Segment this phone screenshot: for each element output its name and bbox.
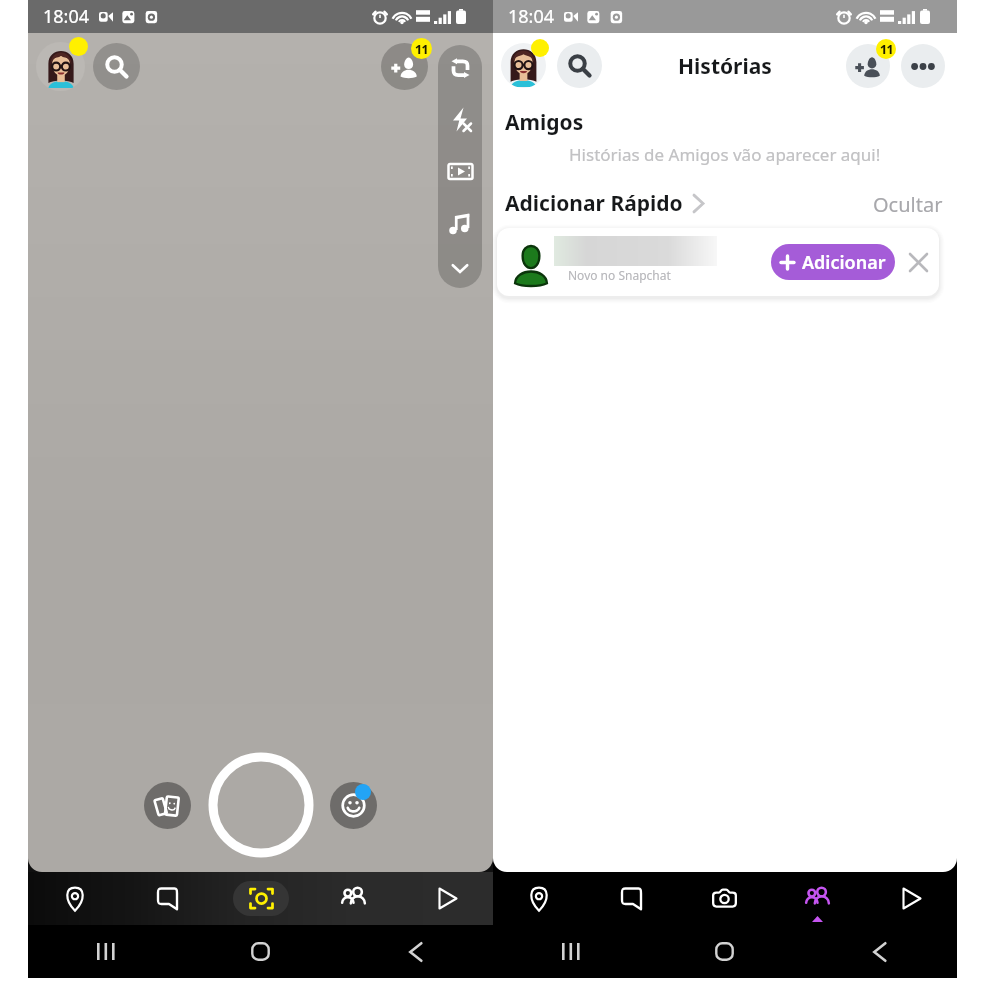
button[interactable]: Capture	[208, 752, 314, 858]
staticText: Histórias de Amigos vão aparecer aqui!	[569, 143, 881, 166]
button[interactable]: Stories	[771, 872, 864, 925]
button[interactable]: Home	[183, 925, 338, 978]
button[interactable]: Flip camera	[438, 45, 482, 89]
button[interactable]: Profile	[501, 43, 546, 88]
button[interactable]: Chat	[585, 872, 678, 925]
button[interactable]: Home	[647, 925, 802, 978]
staticText: 18:04	[43, 4, 90, 29]
button[interactable]: Spotlight	[864, 872, 957, 925]
button[interactable]: Add friends	[381, 43, 428, 90]
button[interactable]: Search	[557, 43, 602, 88]
button[interactable]: Back	[338, 925, 493, 978]
staticText: Amigos	[505, 108, 584, 137]
staticText: 11	[880, 41, 893, 57]
button[interactable]: Profile	[36, 42, 85, 91]
button[interactable]: Adicionar Rápido	[505, 189, 705, 218]
button[interactable]: Search	[93, 43, 140, 90]
button[interactable]: Memories	[144, 782, 191, 829]
staticText: 18:04	[508, 4, 555, 29]
button[interactable]: Map	[28, 872, 121, 925]
button[interactable]: Back	[802, 925, 957, 978]
staticText: Ocultar	[873, 191, 943, 218]
button[interactable]: Spotlight	[400, 872, 493, 925]
button[interactable]: Add friends	[846, 44, 890, 88]
button[interactable]: More options	[443, 257, 477, 279]
staticText: Adicionar Rápido	[505, 189, 683, 218]
button[interactable]: Lenses	[330, 782, 377, 829]
button[interactable]: Novo no Snapchat	[497, 228, 939, 296]
button[interactable]: Recents	[493, 925, 647, 978]
button[interactable]: Camera	[678, 872, 771, 925]
staticText: Adicionar	[802, 250, 886, 275]
button[interactable]: Music	[438, 201, 482, 245]
button[interactable]: Multi snap	[438, 149, 482, 193]
button[interactable]: Adicionar	[771, 244, 895, 280]
staticText: Novo no Snapchat	[568, 267, 671, 283]
button[interactable]: Camera	[233, 881, 289, 916]
staticText: Histórias	[678, 52, 772, 81]
button[interactable]: Flash off	[438, 97, 482, 141]
button[interactable]: Chat	[121, 872, 214, 925]
button[interactable]: Dismiss	[905, 249, 931, 275]
button[interactable]: More options	[901, 44, 945, 88]
button[interactable]: Ocultar	[873, 191, 943, 218]
button[interactable]: Recents	[28, 925, 183, 978]
staticText: 11	[415, 41, 428, 57]
button[interactable]: Stories	[307, 872, 400, 925]
button[interactable]: Map	[493, 872, 585, 925]
